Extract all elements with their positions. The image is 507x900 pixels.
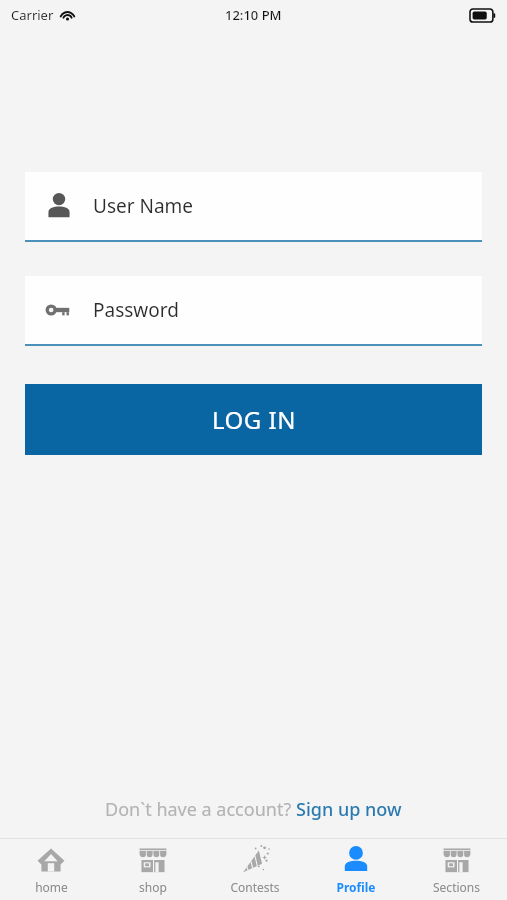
button[interactable]: Don`t have a account? (0, 792, 507, 826)
button[interactable]: Password (25, 276, 482, 346)
staticText: home (35, 879, 68, 895)
staticText: Don`t have a account? (105, 797, 296, 822)
staticText: Sign up now (296, 797, 402, 822)
staticText: User Name (93, 193, 194, 219)
staticText: Carrier (11, 6, 54, 24)
button[interactable]: Sections (406, 839, 507, 900)
staticText: shop (139, 879, 167, 895)
staticText: 12:10 PM (225, 6, 282, 24)
staticText: Sections (433, 879, 480, 895)
button[interactable]: shop (102, 839, 204, 900)
staticText: Contests (230, 879, 280, 895)
button[interactable]: User Name (25, 172, 482, 242)
staticText: Profile (336, 879, 376, 895)
button[interactable]: home (0, 839, 102, 900)
staticText: LOG IN (212, 403, 296, 436)
staticText: Password (93, 297, 179, 323)
button[interactable]: LOG IN (25, 384, 482, 455)
button[interactable]: Profile (305, 839, 406, 900)
button[interactable]: Contests (204, 839, 305, 900)
